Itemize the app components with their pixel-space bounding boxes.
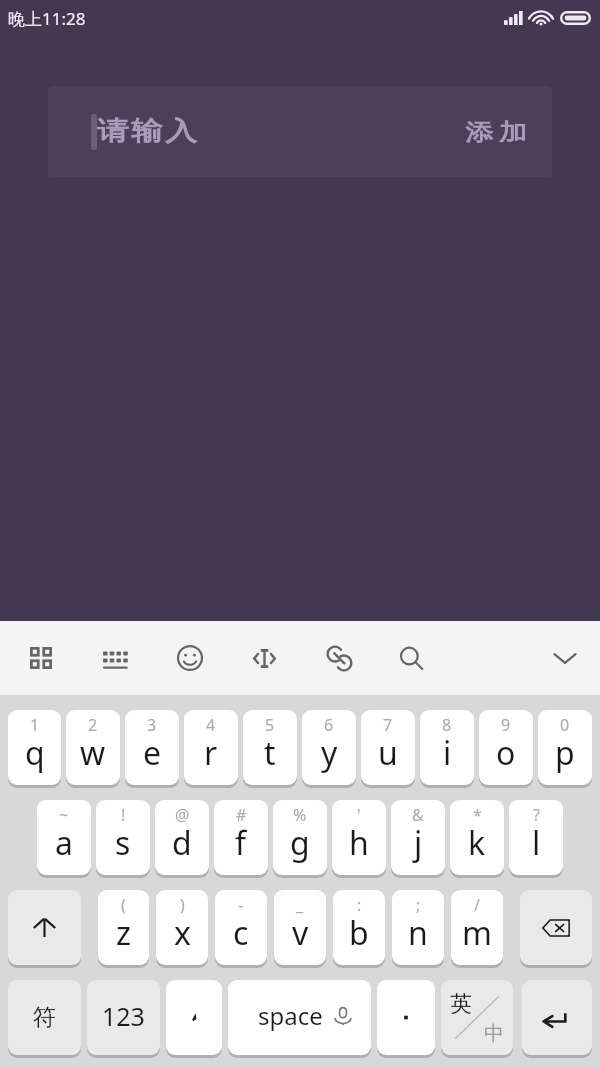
button[interactable]: 6 bbox=[302, 710, 356, 785]
staticText: k bbox=[468, 821, 486, 865]
button[interactable]: Grid bbox=[16, 633, 66, 683]
staticText: ; bbox=[416, 894, 421, 916]
staticText: 请输入 bbox=[96, 115, 198, 147]
staticText: 9 bbox=[501, 714, 511, 736]
button[interactable] bbox=[166, 980, 222, 1055]
button[interactable]: 英 bbox=[441, 980, 513, 1055]
button[interactable] bbox=[522, 980, 592, 1055]
button[interactable]: Search bbox=[386, 633, 436, 683]
staticText: q bbox=[25, 731, 45, 775]
staticText: 7 bbox=[383, 714, 393, 736]
button[interactable]: * bbox=[450, 800, 504, 875]
staticText: 1 bbox=[30, 714, 40, 736]
button[interactable]: Move cursor bbox=[239, 633, 289, 683]
staticText: y bbox=[321, 731, 338, 775]
staticText: 6 bbox=[324, 714, 334, 736]
button[interactable]: Keyboard bbox=[90, 633, 140, 683]
button[interactable]: ~ bbox=[37, 800, 91, 875]
staticText: 2 bbox=[88, 714, 98, 736]
staticText: p bbox=[555, 731, 575, 775]
button[interactable]: 请输入 bbox=[48, 86, 552, 177]
staticText: * bbox=[473, 804, 482, 826]
staticText: & bbox=[412, 804, 424, 826]
button[interactable]: 7 bbox=[361, 710, 415, 785]
button[interactable]: ( bbox=[98, 890, 149, 965]
button[interactable]: Emoji bbox=[165, 633, 215, 683]
staticText: % bbox=[293, 804, 307, 826]
staticText: 5 bbox=[265, 714, 275, 736]
button[interactable]: 9 bbox=[479, 710, 533, 785]
button[interactable]: 3 bbox=[125, 710, 179, 785]
staticText: 123 bbox=[102, 999, 145, 1033]
staticText: e bbox=[143, 731, 162, 775]
staticText: ? bbox=[533, 804, 540, 826]
staticText: m bbox=[462, 911, 492, 955]
button[interactable]: ) bbox=[156, 890, 208, 965]
button[interactable]: _ bbox=[274, 890, 326, 965]
button[interactable]: - bbox=[215, 890, 267, 965]
staticText: ~ bbox=[59, 804, 69, 826]
staticText: - bbox=[238, 894, 244, 916]
staticText: 3 bbox=[147, 714, 157, 736]
button[interactable]: ? bbox=[509, 800, 563, 875]
other: Shift bbox=[8, 890, 81, 968]
button[interactable]: 123 bbox=[87, 980, 160, 1055]
button[interactable] bbox=[377, 980, 435, 1055]
button[interactable]: space bbox=[228, 980, 371, 1055]
staticText: g bbox=[290, 821, 310, 865]
staticText: 晚上11:28 bbox=[8, 7, 86, 30]
staticText: s bbox=[115, 821, 131, 865]
staticText: j bbox=[414, 821, 423, 865]
staticText: : bbox=[357, 894, 362, 916]
staticText: u bbox=[378, 731, 398, 775]
staticText: 0 bbox=[560, 714, 570, 736]
button[interactable]: @ bbox=[155, 800, 209, 875]
staticText: t bbox=[264, 731, 276, 775]
button[interactable] bbox=[520, 890, 592, 965]
staticText: 英 bbox=[450, 990, 472, 1018]
staticText: # bbox=[236, 804, 247, 826]
button[interactable]: 8 bbox=[420, 710, 474, 785]
staticText: f bbox=[235, 821, 247, 865]
staticText: 添加 bbox=[462, 118, 530, 147]
staticText: ' bbox=[357, 804, 361, 826]
staticText: d bbox=[172, 821, 192, 865]
staticText: @ bbox=[175, 804, 190, 826]
staticText: / bbox=[474, 894, 480, 916]
button[interactable]: 5 bbox=[243, 710, 297, 785]
button[interactable]: 1 bbox=[8, 710, 61, 785]
staticText: x bbox=[174, 911, 191, 955]
button[interactable]: % bbox=[273, 800, 327, 875]
button[interactable]: ! bbox=[96, 800, 150, 875]
staticText: 4 bbox=[206, 714, 216, 736]
staticText: space bbox=[258, 999, 323, 1032]
staticText: 8 bbox=[442, 714, 452, 736]
staticText: v bbox=[292, 911, 309, 955]
staticText: 中 bbox=[484, 1021, 504, 1046]
button[interactable]: & bbox=[391, 800, 445, 875]
button[interactable]: 4 bbox=[184, 710, 238, 785]
staticText: r bbox=[204, 731, 218, 775]
other: Backspace bbox=[520, 890, 592, 968]
button[interactable]: ' bbox=[332, 800, 386, 875]
button[interactable] bbox=[8, 890, 81, 965]
other: Enter bbox=[522, 980, 592, 1058]
button[interactable]: Hide keyboard bbox=[540, 633, 590, 683]
staticText: b bbox=[349, 911, 369, 955]
button[interactable]: 符 bbox=[8, 980, 81, 1055]
staticText: h bbox=[349, 821, 369, 865]
staticText: i bbox=[443, 731, 452, 775]
button[interactable]: # bbox=[214, 800, 268, 875]
staticText: l bbox=[532, 821, 541, 865]
button[interactable]: 2 bbox=[66, 710, 120, 785]
staticText: w bbox=[80, 731, 106, 775]
button[interactable]: / bbox=[451, 890, 503, 965]
staticText: c bbox=[233, 911, 249, 955]
button[interactable]: 0 bbox=[538, 710, 592, 785]
button[interactable]: : bbox=[333, 890, 385, 965]
staticText: 符 bbox=[33, 1003, 56, 1032]
button[interactable]: Clipboard bbox=[314, 633, 364, 683]
button[interactable]: ; bbox=[392, 890, 444, 965]
staticText: _ bbox=[296, 894, 304, 916]
staticText: a bbox=[55, 821, 73, 865]
